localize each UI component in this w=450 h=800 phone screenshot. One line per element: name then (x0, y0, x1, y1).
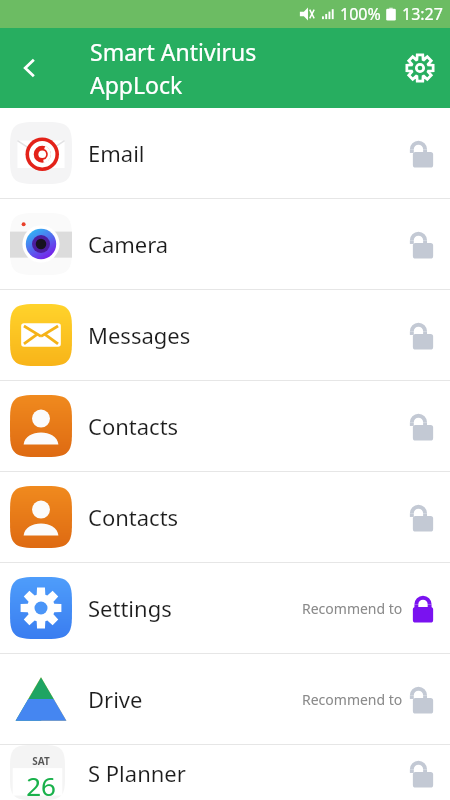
button[interactable]: Back (0, 38, 60, 98)
staticText: 26 (26, 768, 56, 800)
staticText: Recommend to (302, 599, 403, 618)
staticText: Contacts (88, 502, 179, 532)
staticText: S Planner (88, 758, 186, 788)
button[interactable]: Contacts (0, 472, 450, 562)
staticText: AppLock (90, 69, 183, 100)
staticText: Recommend to (302, 690, 403, 709)
button[interactable]: SAT (0, 745, 450, 800)
button[interactable]: Camera (0, 199, 450, 289)
staticText: Messages (88, 320, 191, 350)
button[interactable]: Drive (0, 654, 450, 744)
button[interactable]: Settings (0, 563, 450, 653)
staticText: Email (88, 138, 145, 168)
button[interactable]: Settings (390, 38, 450, 98)
staticText: 13:27 (402, 3, 443, 25)
staticText: Smart Antivirus (90, 36, 257, 67)
button[interactable]: Messages (0, 290, 450, 380)
staticText: Contacts (88, 411, 179, 441)
staticText: SAT (32, 754, 50, 768)
staticText: Drive (88, 684, 143, 714)
button[interactable]: Email (0, 108, 450, 198)
button[interactable]: Contacts (0, 381, 450, 471)
staticText: Camera (88, 229, 169, 259)
staticText: Settings (88, 593, 172, 623)
staticText: 100% (340, 3, 381, 25)
